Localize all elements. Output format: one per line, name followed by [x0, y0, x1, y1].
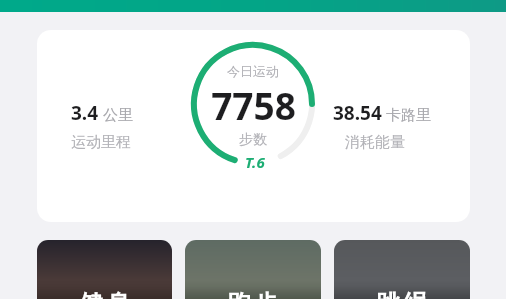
button[interactable]: 跑步: [185, 240, 321, 299]
staticText: 消耗能量: [345, 133, 405, 152]
staticText: 健身: [78, 289, 132, 299]
staticText: 38.54: [333, 100, 382, 126]
staticText: 卡路里: [386, 106, 431, 125]
button[interactable]: 健身: [37, 240, 172, 299]
button[interactable]: 3.4: [37, 30, 470, 222]
staticText: 3.4: [71, 100, 99, 126]
staticText: 跳绳: [375, 289, 429, 299]
button[interactable]: 跳绳: [334, 240, 470, 299]
staticText: 步数: [239, 131, 267, 149]
staticText: 跑步: [226, 289, 280, 299]
staticText: 运动里程: [71, 133, 131, 152]
staticText: 公里: [103, 106, 133, 125]
staticText: T.6: [245, 152, 265, 172]
staticText: 今日运动: [227, 63, 279, 79]
staticText: 7758: [211, 80, 296, 130]
